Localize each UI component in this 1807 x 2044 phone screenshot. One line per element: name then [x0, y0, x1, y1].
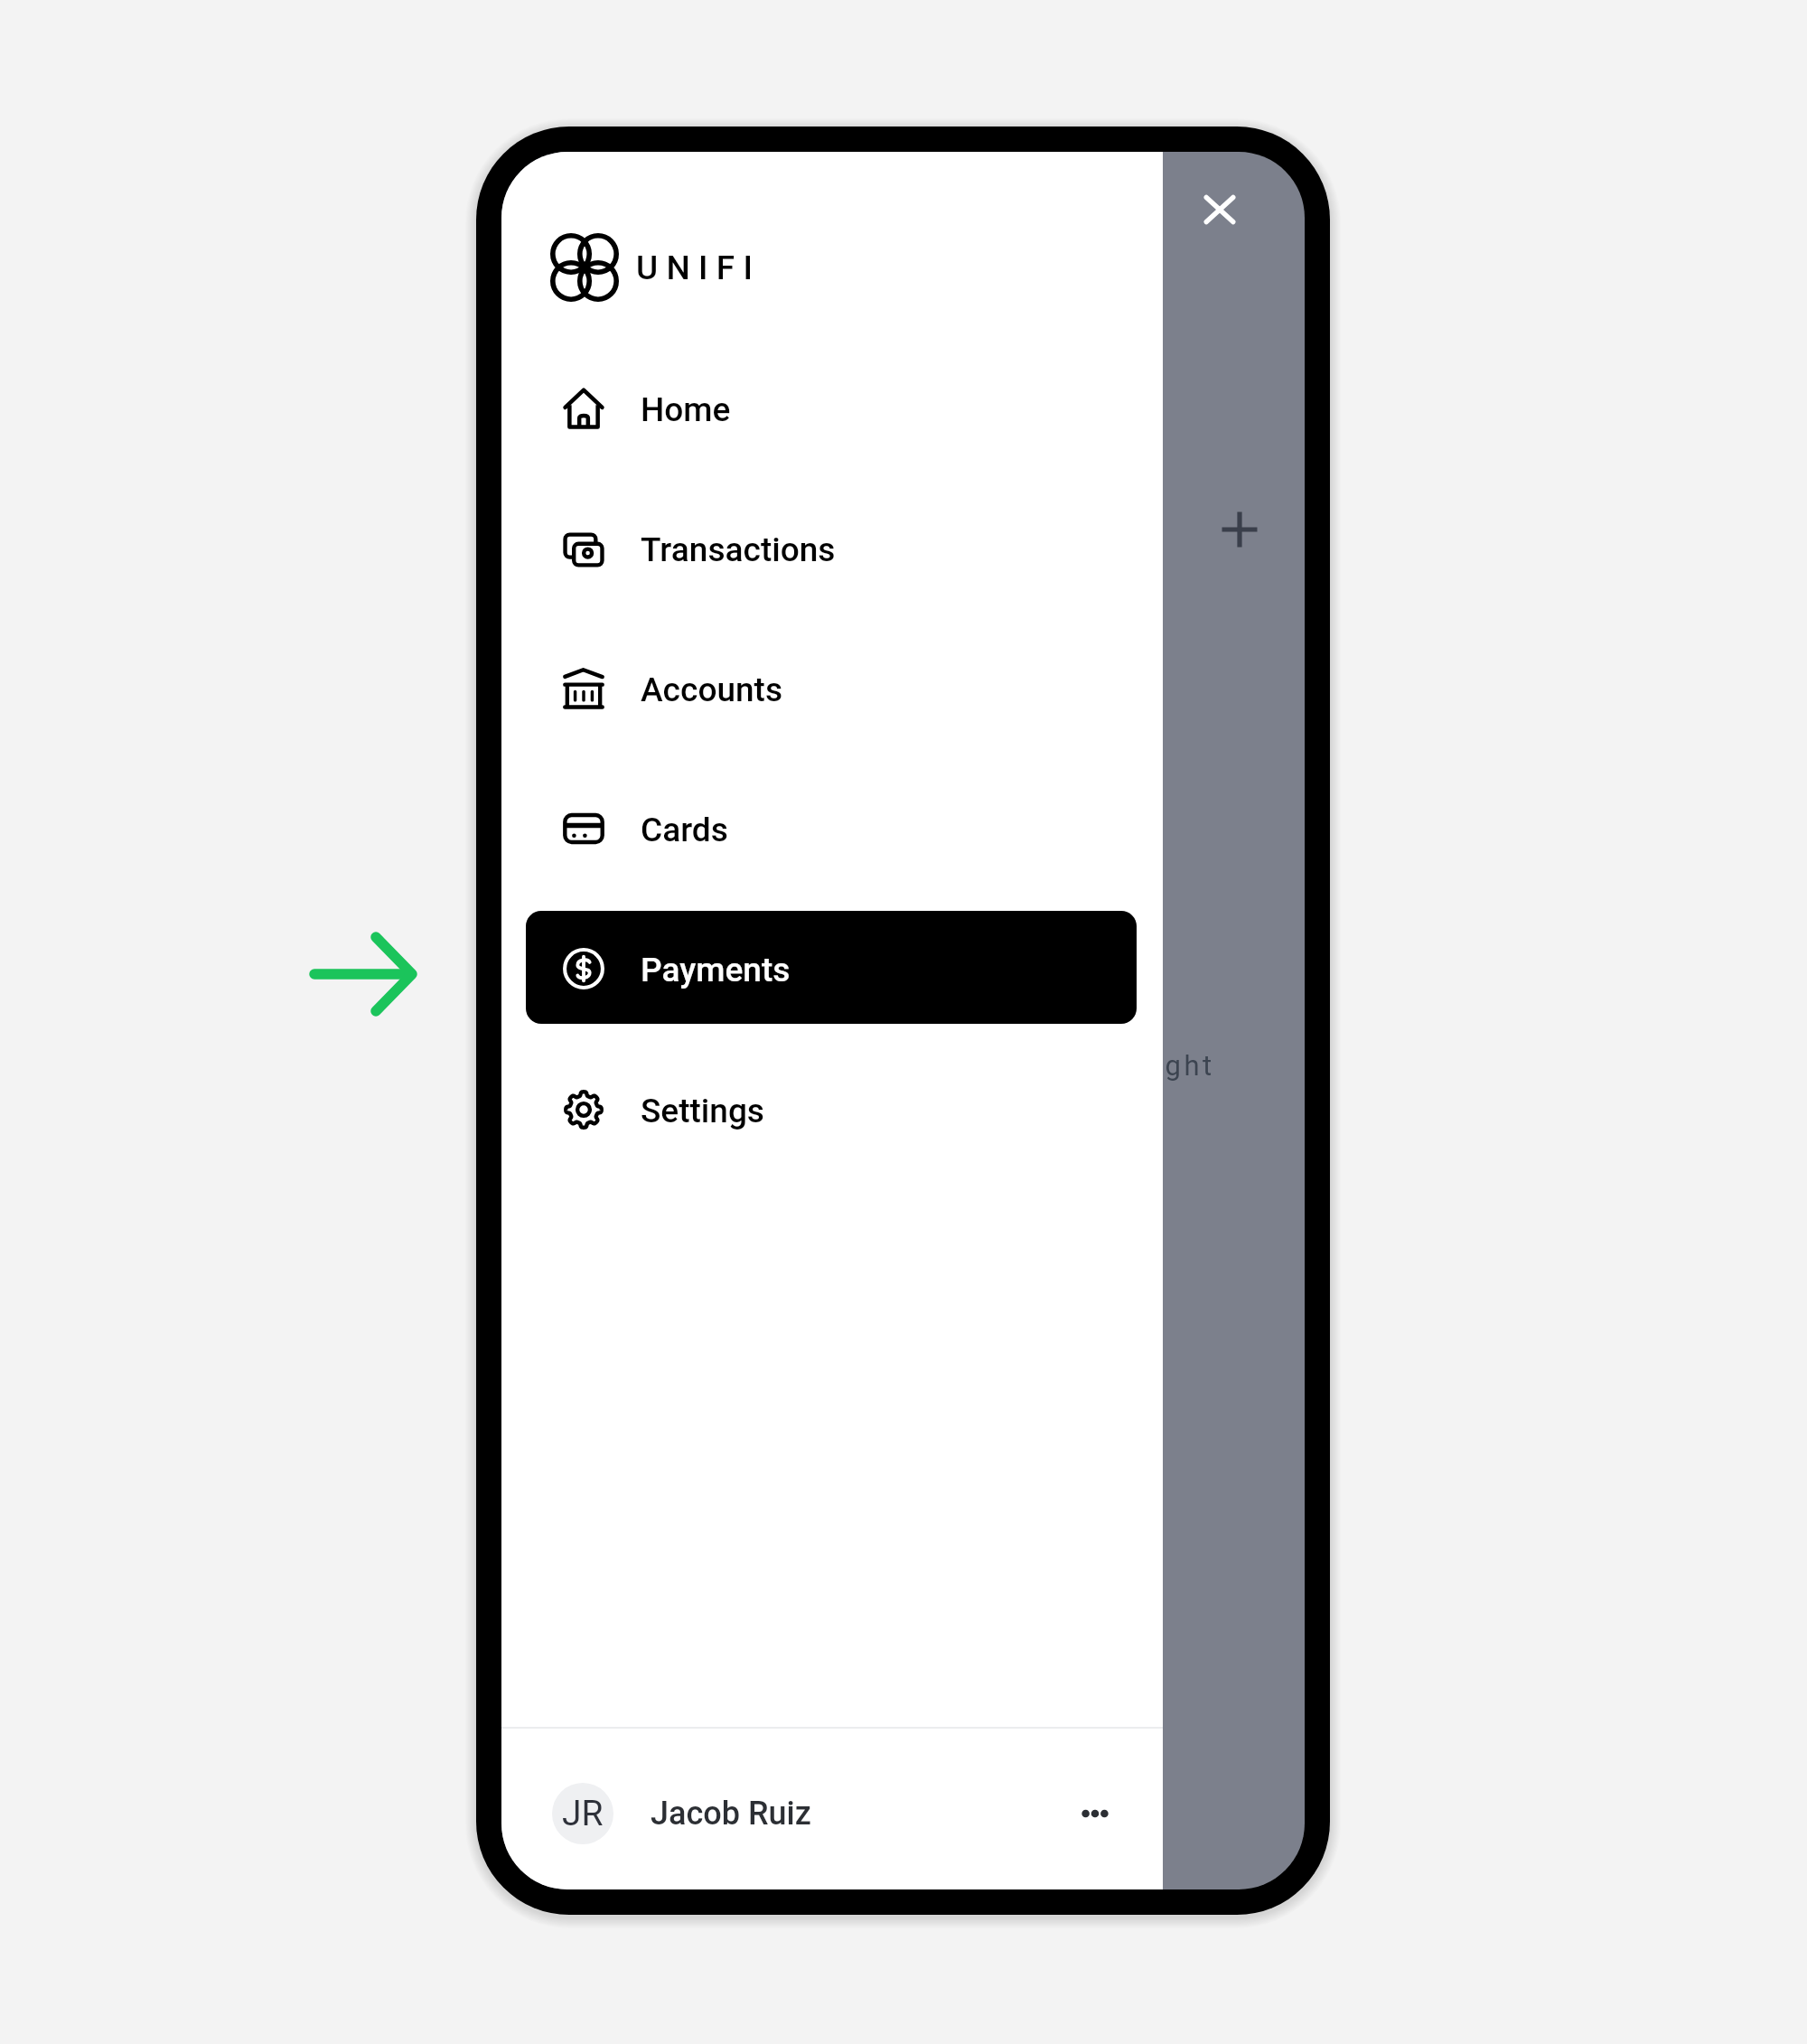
- button[interactable]: Settings: [526, 1052, 1137, 1165]
- button[interactable]: Home: [526, 351, 1137, 464]
- staticText: Settings: [641, 1092, 764, 1130]
- button[interactable]: UNIFI: [550, 232, 762, 303]
- button[interactable]: More options: [1057, 1776, 1133, 1852]
- staticText: Accounts: [641, 670, 783, 709]
- staticText: Home: [641, 390, 731, 429]
- staticText: Light: [1137, 1049, 1215, 1082]
- staticText: JR: [562, 1793, 604, 1834]
- button[interactable]: Add: [1200, 490, 1279, 569]
- button[interactable]: Transactions: [526, 491, 1137, 604]
- staticText: UNIFI: [636, 248, 762, 287]
- staticText: Cards: [641, 811, 728, 849]
- staticText: Transactions: [641, 530, 836, 569]
- staticText: Payments: [641, 951, 791, 989]
- button[interactable]: Accounts: [526, 631, 1137, 744]
- button[interactable]: Close navigation drawer: [1180, 170, 1259, 249]
- button[interactable]: Cards: [526, 771, 1137, 884]
- staticText: Jacob Ruiz: [651, 1795, 811, 1833]
- button[interactable]: Payments: [526, 911, 1137, 1024]
- button[interactable]: JR: [501, 1759, 1163, 1868]
